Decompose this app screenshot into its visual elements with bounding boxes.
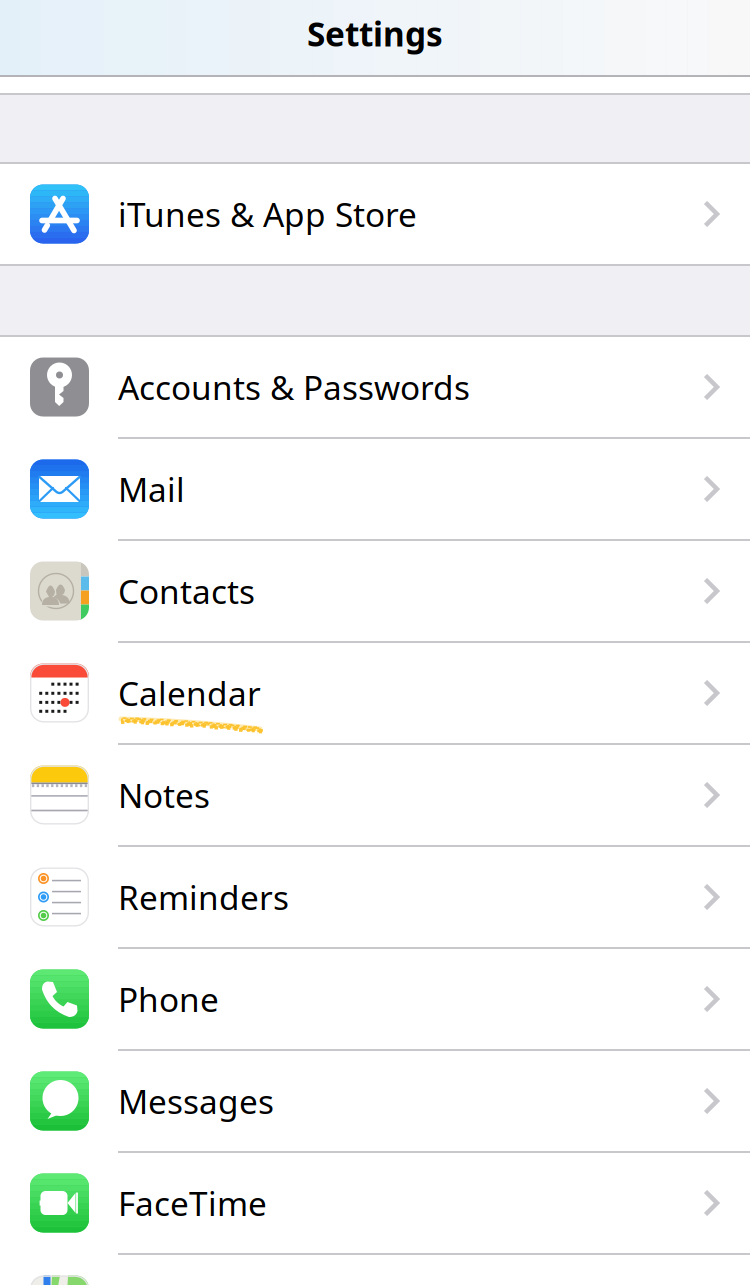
- staticText: Phone: [118, 977, 219, 1021]
- button[interactable]: Accounts & Passwords: [0, 337, 750, 437]
- button[interactable]: Calendar: [0, 643, 750, 743]
- staticText: Calendar: [118, 671, 261, 715]
- staticText: Notes: [118, 773, 210, 817]
- staticText: Reminders: [118, 875, 289, 919]
- button[interactable]: Maps: [0, 1255, 750, 1285]
- staticText: FaceTime: [118, 1181, 267, 1225]
- button[interactable]: Mail: [0, 439, 750, 539]
- button[interactable]: Reminders: [0, 847, 750, 947]
- staticText: Mail: [118, 467, 185, 511]
- button[interactable]: iTunes & App Store: [0, 164, 750, 264]
- button[interactable]: Notes: [0, 745, 750, 845]
- staticText: Accounts & Passwords: [118, 365, 470, 409]
- staticText: iTunes & App Store: [118, 192, 417, 236]
- button[interactable]: Messages: [0, 1051, 750, 1151]
- staticText: Settings: [307, 11, 443, 56]
- button[interactable]: Contacts: [0, 541, 750, 641]
- staticText: Contacts: [118, 569, 255, 613]
- button[interactable]: Phone: [0, 949, 750, 1049]
- staticText: Messages: [118, 1079, 274, 1123]
- button[interactable]: FaceTime: [0, 1153, 750, 1253]
